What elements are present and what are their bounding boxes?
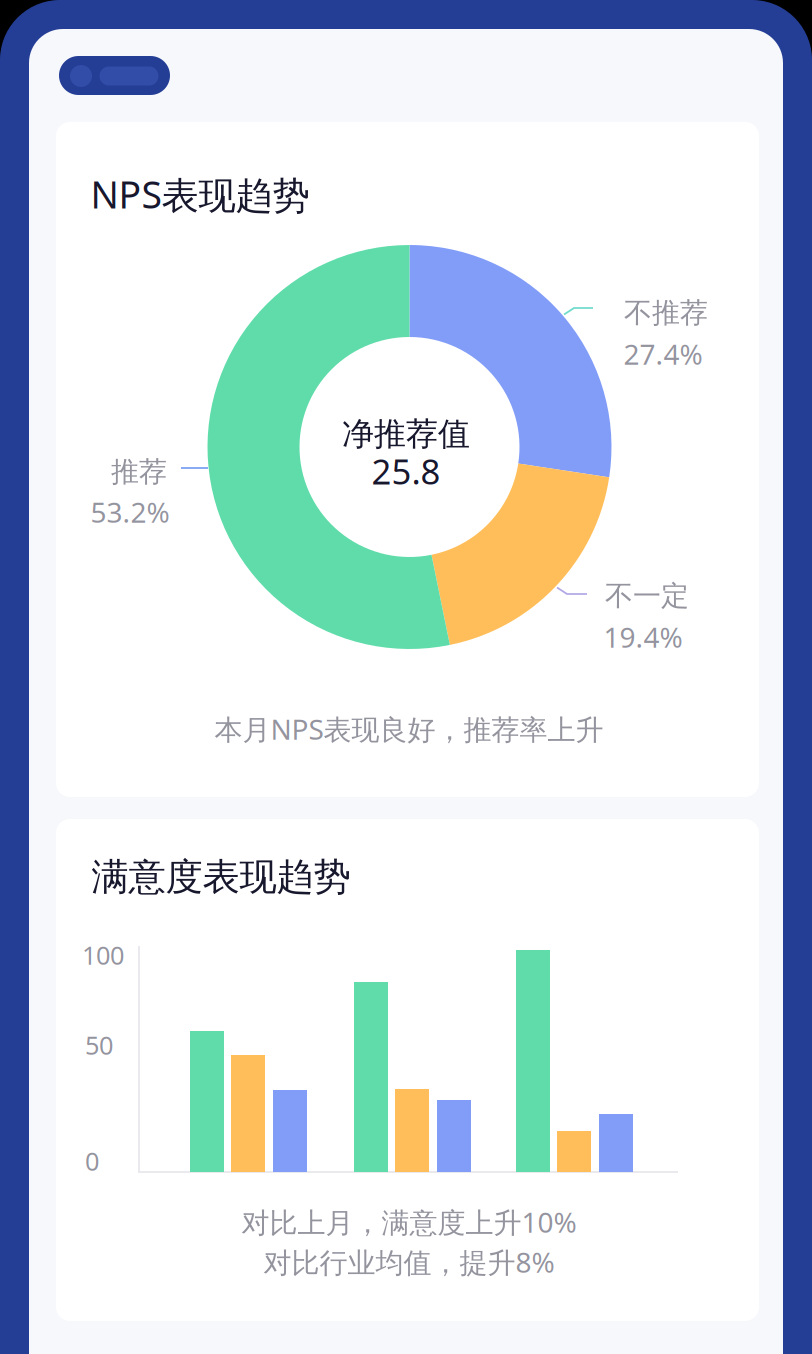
button[interactable]: NPS表现趋势 bbox=[56, 122, 759, 797]
staticText: 53.2% bbox=[90, 493, 169, 531]
staticText: 0 bbox=[85, 1144, 99, 1178]
button[interactable]: 满意度表现趋势 bbox=[56, 819, 759, 1321]
staticText: 本月NPS表现良好，推荐率上升 bbox=[214, 710, 603, 748]
staticText: 不一定 bbox=[605, 579, 689, 613]
staticText: 推荐 bbox=[111, 455, 167, 489]
staticText: NPS表现趋势 bbox=[90, 169, 309, 219]
staticText: 100 bbox=[82, 938, 124, 972]
staticText: 对比上月，满意度上升10% bbox=[241, 1203, 576, 1241]
staticText: 27.4% bbox=[623, 335, 702, 373]
staticText: 不推荐 bbox=[624, 296, 708, 330]
staticText: 25.8 bbox=[371, 448, 440, 494]
staticText: 对比行业均值，提升8% bbox=[263, 1243, 554, 1281]
staticText: 50 bbox=[85, 1028, 113, 1062]
staticText: 满意度表现趋势 bbox=[91, 854, 350, 900]
staticText: 净推荐值 bbox=[342, 414, 470, 454]
staticText: 19.4% bbox=[603, 618, 682, 656]
